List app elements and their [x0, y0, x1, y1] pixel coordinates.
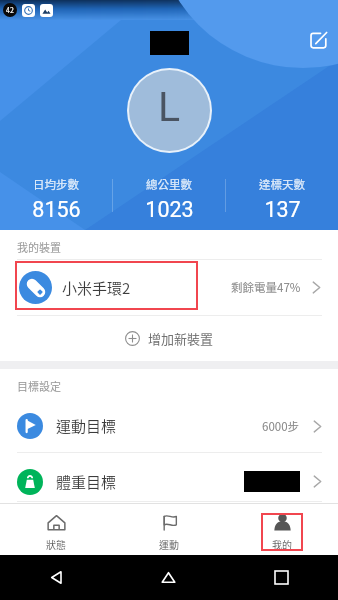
button[interactable]: 增加新裝置	[0, 316, 338, 361]
staticText: 42	[6, 5, 14, 15]
staticText: 1023	[145, 197, 194, 222]
staticText: 增加新裝置	[148, 329, 214, 348]
staticText: 小米手環2	[62, 277, 131, 299]
button[interactable]: 日均步數	[0, 175, 112, 230]
staticText: 我的裝置	[17, 239, 61, 255]
button[interactable]: Home	[112, 555, 225, 600]
button[interactable]: 體重目標	[0, 453, 338, 502]
button[interactable]: Profile avatar	[127, 68, 212, 153]
button[interactable]: Back	[0, 555, 112, 600]
button[interactable]: Recent apps	[225, 555, 338, 600]
staticText: 137	[264, 197, 301, 222]
staticText: 我的	[272, 537, 292, 551]
staticText: 運動	[159, 537, 179, 551]
button[interactable]: 運動目標	[0, 399, 338, 453]
staticText: 體重目標	[56, 471, 117, 493]
staticText: 目標設定	[17, 378, 61, 394]
staticText: 狀態	[46, 537, 66, 551]
staticText: 日均步數	[33, 176, 79, 193]
button[interactable]: 我的	[225, 504, 338, 555]
staticText: 6000步	[262, 418, 300, 435]
button[interactable]: 小米手環2	[0, 259, 338, 316]
staticText: L	[158, 83, 181, 131]
button[interactable]: Edit profile	[303, 25, 333, 55]
staticText: 運動目標	[56, 415, 117, 437]
staticText: 剩餘電量47%	[231, 279, 301, 296]
button[interactable]: 狀態	[0, 504, 112, 555]
button[interactable]: 總公里數	[113, 175, 225, 230]
staticText: 總公里數	[146, 176, 192, 193]
button[interactable]: 達標天數	[226, 175, 338, 230]
button[interactable]: 運動	[112, 504, 225, 555]
staticText: 8156	[32, 197, 81, 222]
staticText: 達標天數	[259, 176, 305, 193]
